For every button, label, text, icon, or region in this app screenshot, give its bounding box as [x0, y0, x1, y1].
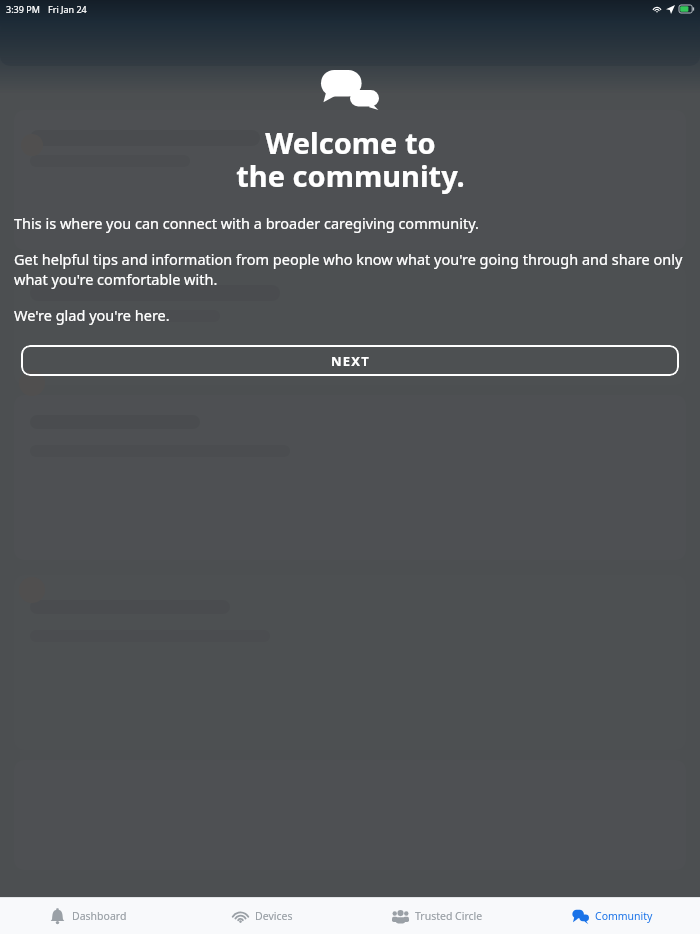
button[interactable]: Community: [525, 898, 700, 934]
button[interactable]: NEXT: [21, 345, 679, 376]
staticText: 3:39 PM: [6, 3, 40, 15]
button[interactable]: Dashboard: [0, 898, 175, 934]
staticText: This is where you can connect with a bro…: [14, 213, 479, 233]
button[interactable]: Devices: [175, 898, 350, 934]
staticText: Community: [595, 909, 653, 923]
staticText: Fri Jan 24: [48, 3, 87, 15]
button[interactable]: Trusted Circle: [350, 898, 525, 934]
staticText: Trusted Circle: [415, 909, 483, 923]
staticText: Get helpful tips and information from pe…: [14, 249, 686, 289]
staticText: Dashboard: [72, 909, 127, 923]
staticText: Devices: [255, 909, 293, 923]
staticText: NEXT: [331, 352, 370, 370]
staticText: Welcome to the community.: [236, 123, 465, 195]
staticText: We're glad you're here.: [14, 305, 170, 325]
